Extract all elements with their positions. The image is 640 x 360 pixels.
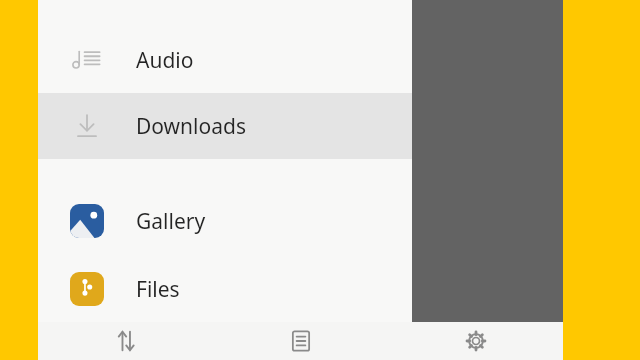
- button[interactable]: Gallery: [38, 188, 412, 254]
- button[interactable]: Downloads: [38, 93, 412, 159]
- staticText: Gallery: [136, 207, 206, 236]
- button[interactable]: Audio: [38, 27, 412, 93]
- staticText: Downloads: [136, 112, 246, 141]
- button[interactable]: Files: [38, 258, 412, 320]
- button[interactable]: Sort: [38, 322, 213, 360]
- button[interactable]: List view: [213, 322, 388, 360]
- button[interactable]: Settings: [388, 322, 563, 360]
- staticText: Files: [136, 275, 180, 304]
- staticText: Audio: [136, 46, 194, 75]
